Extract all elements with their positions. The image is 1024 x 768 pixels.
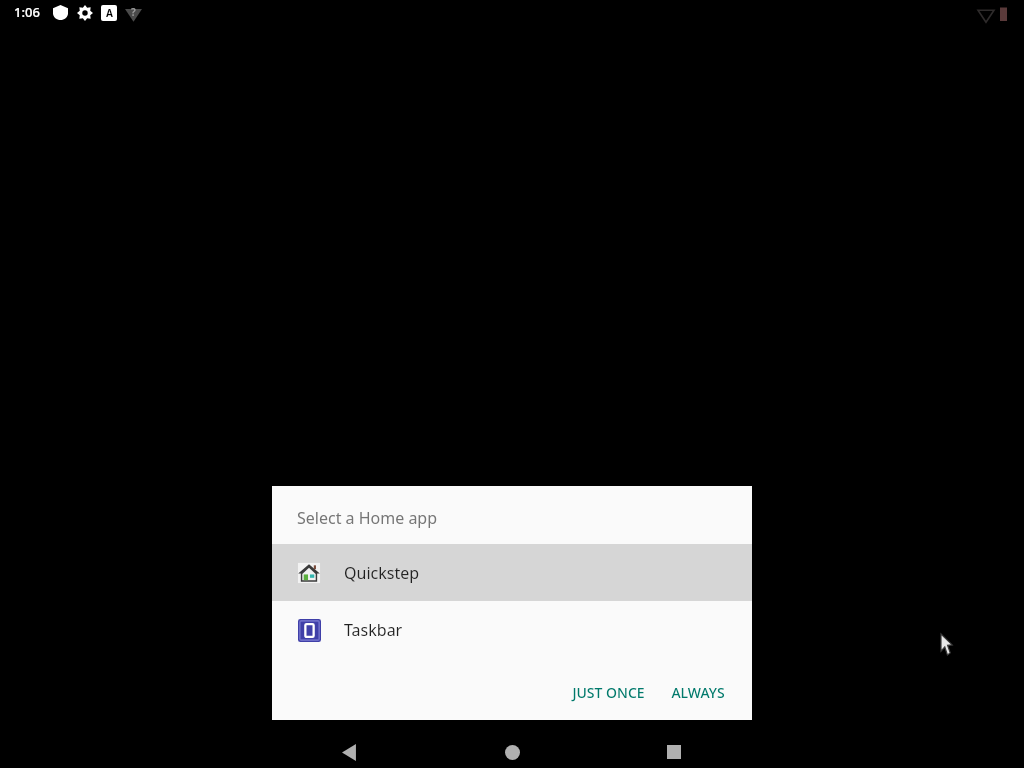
staticText: ALWAYS <box>671 683 725 702</box>
button[interactable]: Quickstep <box>272 544 752 601</box>
staticText: Taskbar <box>344 619 403 641</box>
button[interactable]: JUST ONCE <box>564 675 653 710</box>
button[interactable]: Home <box>488 728 536 768</box>
button[interactable]: Back <box>326 728 374 768</box>
staticText: Select a Home app <box>297 507 438 529</box>
staticText: ? <box>131 5 136 19</box>
button[interactable]: Recent apps <box>650 728 698 768</box>
staticText: A <box>106 6 113 20</box>
button[interactable]: ALWAYS <box>663 675 733 710</box>
staticText: 1:06 <box>14 3 40 21</box>
button[interactable]: Taskbar <box>272 601 752 658</box>
staticText: JUST ONCE <box>572 683 645 702</box>
staticText: Quickstep <box>344 562 420 584</box>
